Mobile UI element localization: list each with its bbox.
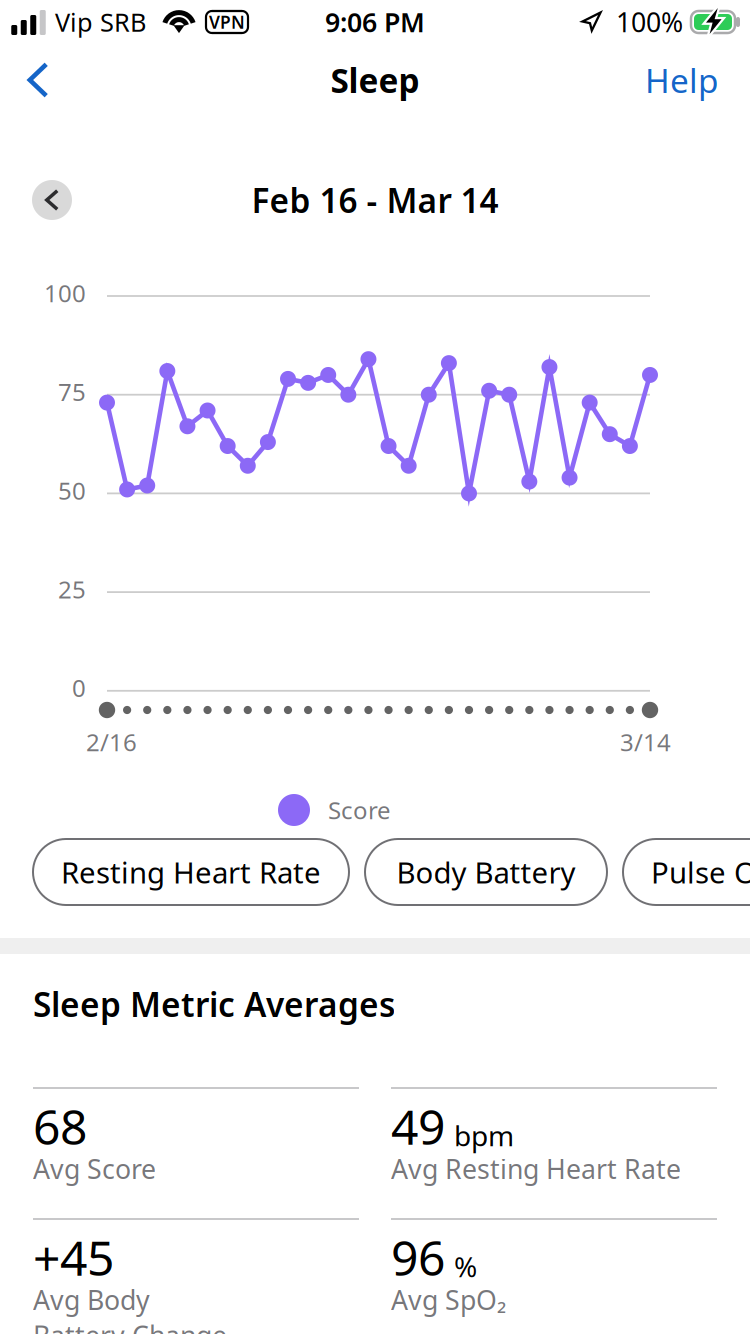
staticText: 100% bbox=[616, 4, 683, 40]
staticText: 75 bbox=[58, 376, 86, 408]
staticText: 9:06 PM bbox=[325, 4, 425, 40]
staticText: bpm bbox=[454, 1117, 514, 1154]
staticText: Vip SRB bbox=[55, 5, 146, 39]
staticText: Help bbox=[645, 58, 719, 102]
staticText: 100 bbox=[44, 277, 86, 309]
staticText: 0 bbox=[72, 672, 86, 704]
button[interactable]: Body Battery bbox=[365, 839, 607, 905]
button[interactable]: Previous period bbox=[32, 180, 72, 220]
staticText: Sleep bbox=[330, 58, 419, 102]
staticText: 49 bbox=[391, 1094, 445, 1158]
staticText: Resting Heart Rate bbox=[61, 852, 321, 891]
staticText: VPN bbox=[209, 10, 245, 33]
button[interactable]: Pulse Ox bbox=[623, 839, 750, 905]
button[interactable]: Help bbox=[609, 45, 719, 115]
staticText: 96 bbox=[391, 1225, 445, 1289]
staticText: Score bbox=[328, 794, 391, 826]
staticText: 68 bbox=[33, 1094, 87, 1158]
staticText: Sleep Metric Averages bbox=[33, 982, 395, 1026]
staticText: Avg Body Battery Change bbox=[33, 1282, 227, 1334]
staticText: Feb 16 - Mar 14 bbox=[251, 178, 498, 222]
staticText: Body Battery bbox=[396, 852, 575, 891]
staticText: % bbox=[454, 1248, 477, 1285]
staticText: +45 bbox=[33, 1225, 114, 1289]
staticText: 3/14 bbox=[620, 726, 671, 758]
button[interactable]: Resting Heart Rate bbox=[33, 839, 349, 905]
staticText: Avg SpO₂ bbox=[391, 1282, 506, 1317]
staticText: Avg Resting Heart Rate bbox=[391, 1151, 681, 1186]
staticText: 2/16 bbox=[86, 726, 137, 758]
button[interactable]: Back bbox=[4, 45, 72, 115]
staticText: 50 bbox=[58, 474, 86, 506]
staticText: Avg Score bbox=[33, 1151, 156, 1186]
staticText: Pulse Ox bbox=[651, 852, 750, 891]
staticText: 25 bbox=[58, 573, 86, 605]
